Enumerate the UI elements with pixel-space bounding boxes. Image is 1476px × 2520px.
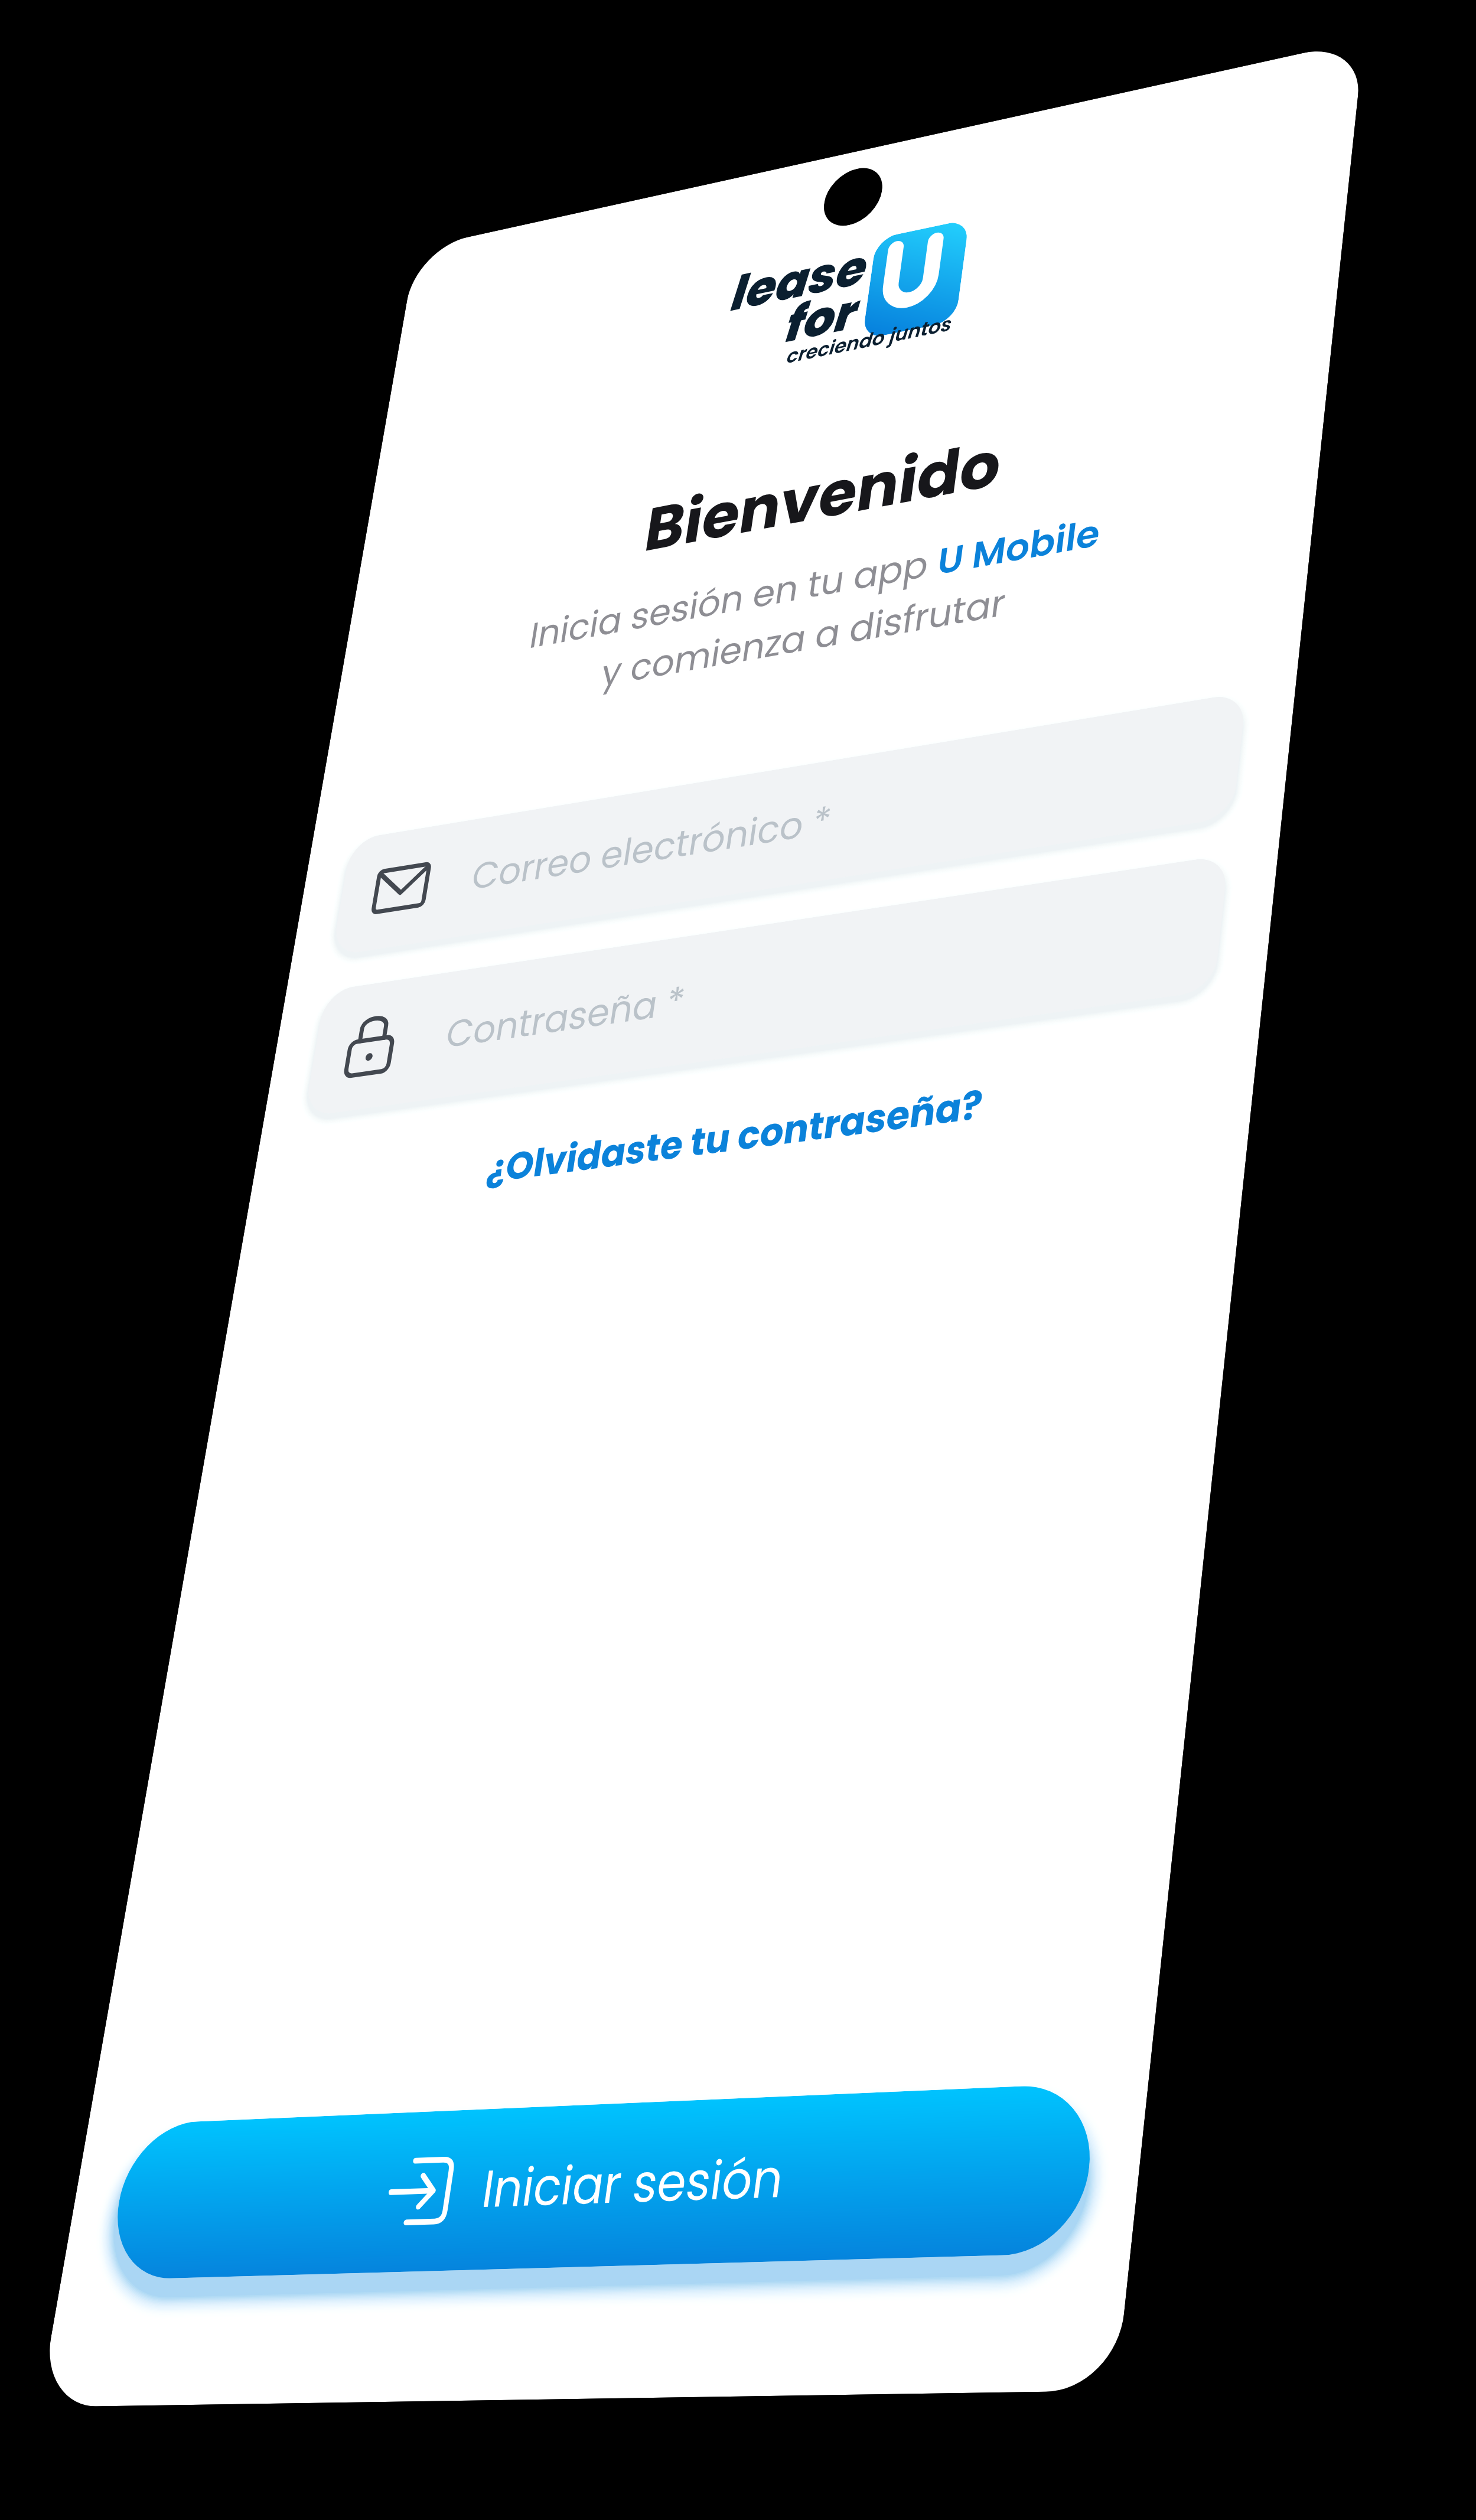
- staticText: Iniciar sesión: [478, 2141, 788, 2225]
- other: Password: [343, 1012, 399, 1079]
- staticText: Contraseña *: [442, 973, 689, 1061]
- staticText: y comienza a disfrutar: [598, 576, 1009, 699]
- button[interactable]: Password: [304, 855, 1229, 1117]
- staticText: Correo electrónico *: [468, 793, 835, 903]
- staticText: Bienvenido: [639, 420, 1006, 573]
- other: Iniciar sesión: [383, 2156, 456, 2226]
- staticText: for: [782, 277, 862, 359]
- button[interactable]: Email: [331, 692, 1246, 956]
- staticText: lease: [727, 233, 872, 328]
- button[interactable]: ¿Olvidaste tu contraseña?: [483, 1077, 986, 1196]
- staticText: Inicia sesión en tu app U Mobile: [526, 506, 1103, 661]
- button[interactable]: Iniciar sesión: [106, 2083, 1098, 2280]
- other: Email: [371, 861, 432, 915]
- staticText: creciendo juntos: [785, 310, 954, 370]
